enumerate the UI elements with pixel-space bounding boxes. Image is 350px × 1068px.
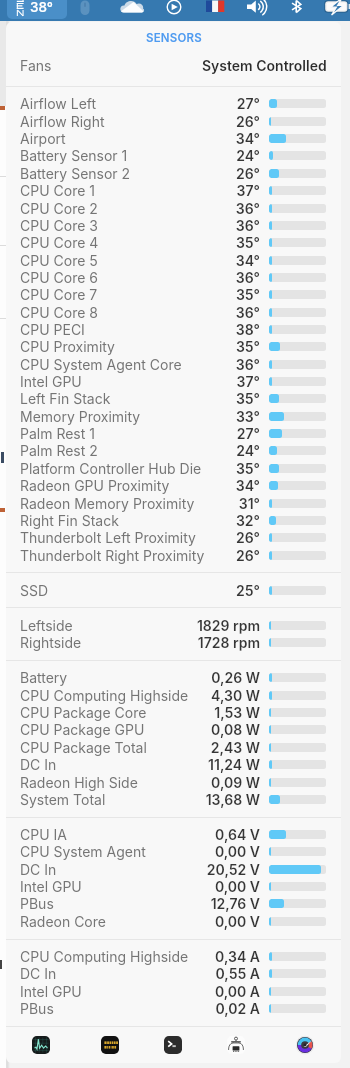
staticText: Platform Controller Hub Die — [20, 460, 202, 477]
button[interactable]: CPU Computing Highside — [6, 948, 341, 965]
staticText: PBus — [20, 895, 54, 912]
staticText: 11,24 W — [208, 756, 260, 773]
button[interactable]: Fans — [6, 56, 341, 75]
button[interactable]: Radeon GPU Proximity — [6, 477, 341, 494]
button[interactable]: CPU Computing Highside — [6, 687, 341, 704]
staticText: 0,00 V — [214, 843, 260, 860]
staticText: Thunderbolt Left Proximity — [20, 529, 196, 546]
staticText: CPU Core 8 — [20, 304, 98, 321]
button[interactable]: Rightside — [6, 634, 341, 651]
button[interactable]: Intel GPU — [6, 878, 341, 895]
button[interactable]: DC In — [6, 756, 341, 773]
button[interactable]: Leftside — [6, 617, 341, 634]
button[interactable]: Radeon Core — [6, 913, 341, 930]
button[interactable]: Palm Rest 2 — [6, 442, 341, 459]
staticText: Palm Rest 1 — [20, 425, 95, 442]
staticText: System Total — [20, 791, 106, 808]
staticText: Battery — [20, 669, 68, 686]
button[interactable]: CPU System Agent — [6, 843, 341, 860]
button[interactable]: PBus — [6, 895, 341, 912]
button[interactable]: CPU Core 3 — [6, 217, 341, 234]
button[interactable]: Battery — [6, 669, 341, 686]
staticText: 37° — [236, 373, 260, 390]
staticText: 1829 rpm — [196, 617, 260, 634]
staticText: 26° — [235, 547, 260, 564]
staticText: Radeon High Side — [20, 774, 138, 791]
button[interactable]: Battery Sensor 1 — [6, 147, 341, 164]
staticText: 27° — [236, 95, 260, 112]
button[interactable]: CPU Core 5 — [6, 252, 341, 269]
button[interactable]: Sensors menu 38 degrees — [7, 0, 67, 19]
button[interactable]: CPU Package Total — [6, 739, 341, 756]
staticText: CPU Core 7 — [20, 286, 98, 303]
button[interactable]: Left Fin Stack — [6, 390, 341, 407]
button[interactable]: Intel GPU — [6, 983, 341, 1000]
button[interactable]: CPU System Agent Core — [6, 356, 341, 373]
button[interactable]: CPU Proximity — [6, 338, 341, 355]
button[interactable]: System Total — [6, 791, 341, 808]
button[interactable]: Battery Sensor 2 — [6, 165, 341, 182]
staticText: 13,68 W — [205, 791, 260, 808]
button[interactable]: SSD — [6, 582, 341, 599]
staticText: CPU Proximity — [20, 338, 115, 355]
staticText: 34° — [235, 477, 260, 494]
staticText: 33° — [235, 408, 260, 425]
button[interactable]: Thunderbolt Right Proximity — [6, 547, 341, 564]
button[interactable]: Hardware Monitor — [227, 1036, 245, 1054]
button[interactable]: Palm Rest 1 — [6, 425, 341, 442]
staticText: Left Fin Stack — [20, 390, 111, 407]
staticText: 24° — [236, 147, 260, 164]
button[interactable]: Activity Monitor — [32, 1036, 50, 1054]
button[interactable]: Thunderbolt Left Proximity — [6, 529, 341, 546]
button[interactable]: Right Fin Stack — [6, 512, 341, 529]
button[interactable]: Airflow Right — [6, 113, 341, 130]
button[interactable]: Safari — [296, 1036, 314, 1054]
button[interactable]: Terminal — [164, 1036, 182, 1054]
staticText: DC In — [20, 756, 57, 773]
button[interactable]: Memory Proximity — [6, 408, 341, 425]
button[interactable]: Intel GPU — [6, 373, 341, 390]
staticText: 35° — [235, 338, 260, 355]
staticText: CPU Computing Highside — [20, 948, 189, 965]
button[interactable]: CPU Core 1 — [6, 182, 341, 199]
button[interactable]: CPU IA — [6, 826, 341, 843]
staticText: CPU Package Total — [20, 739, 147, 756]
button[interactable]: CPU Package Core — [6, 704, 341, 721]
button[interactable]: CPU Core 8 — [6, 304, 341, 321]
button[interactable]: CPU Core 7 — [6, 286, 341, 303]
staticText: CPU Core 1 — [20, 182, 95, 199]
staticText: 24° — [236, 442, 260, 459]
button[interactable]: DC In — [6, 965, 341, 982]
button[interactable]: CPU Core 2 — [6, 200, 341, 217]
staticText: DC In — [20, 965, 57, 982]
button[interactable]: Radeon Memory Proximity — [6, 495, 341, 512]
button[interactable]: Airflow Left — [6, 95, 341, 112]
staticText: DC In — [20, 861, 57, 878]
staticText: Palm Rest 2 — [20, 442, 98, 459]
button[interactable]: CPU Package GPU — [6, 721, 341, 738]
staticText: 0,08 W — [211, 721, 260, 738]
button[interactable]: CPU Core 4 — [6, 234, 341, 251]
button[interactable]: Airport — [6, 130, 341, 147]
button[interactable]: CPU Core 6 — [6, 269, 341, 286]
staticText: CPU System Agent — [20, 843, 146, 860]
staticText: 36° — [235, 200, 260, 217]
staticText: CPU IA — [20, 826, 67, 843]
staticText: CPU Package GPU — [20, 721, 145, 738]
staticText: 1,53 W — [214, 704, 260, 721]
staticText: 34° — [235, 130, 260, 147]
button[interactable]: DC In — [6, 861, 341, 878]
button[interactable]: Radeon High Side — [6, 774, 341, 791]
staticText: 0,26 W — [211, 669, 260, 686]
staticText: 35° — [235, 286, 260, 303]
staticText: 0,02 A — [215, 1000, 260, 1017]
button[interactable]: PBus — [6, 1000, 341, 1017]
button[interactable]: CPU PECI — [6, 321, 341, 338]
staticText: 0,00 A — [214, 983, 260, 1000]
staticText: Memory Proximity — [20, 408, 141, 425]
button[interactable]: Platform Controller Hub Die — [6, 460, 341, 477]
staticText: Airflow Right — [20, 113, 105, 130]
staticText: 31° — [238, 495, 260, 512]
staticText: CPU Core 6 — [20, 269, 98, 286]
button[interactable]: Warned — [101, 1036, 119, 1054]
